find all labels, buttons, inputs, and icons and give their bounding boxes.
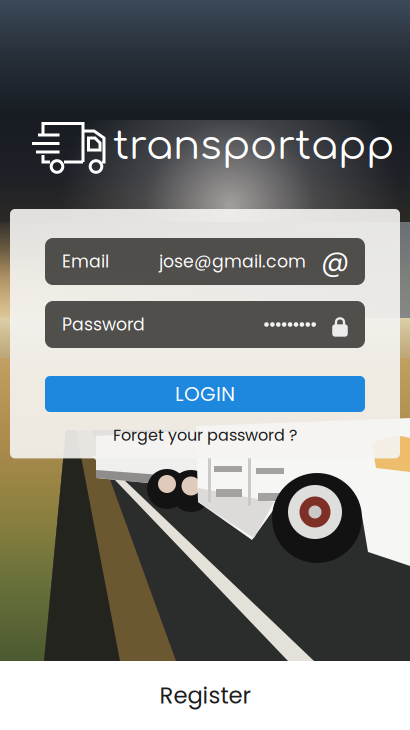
button[interactable]: Forget your password ?	[113, 422, 297, 448]
button[interactable]: Register	[0, 661, 410, 730]
staticText: jose@gmail.com	[159, 249, 306, 274]
staticText: @	[321, 242, 349, 281]
staticText: Forget your password ?	[113, 424, 297, 446]
staticText: transportapp	[113, 124, 394, 168]
staticText: Password	[62, 312, 145, 337]
button[interactable]: LOGIN	[45, 376, 365, 412]
staticText: LOGIN	[175, 380, 235, 408]
staticText: Register	[159, 680, 250, 711]
staticText: Email	[62, 249, 109, 274]
